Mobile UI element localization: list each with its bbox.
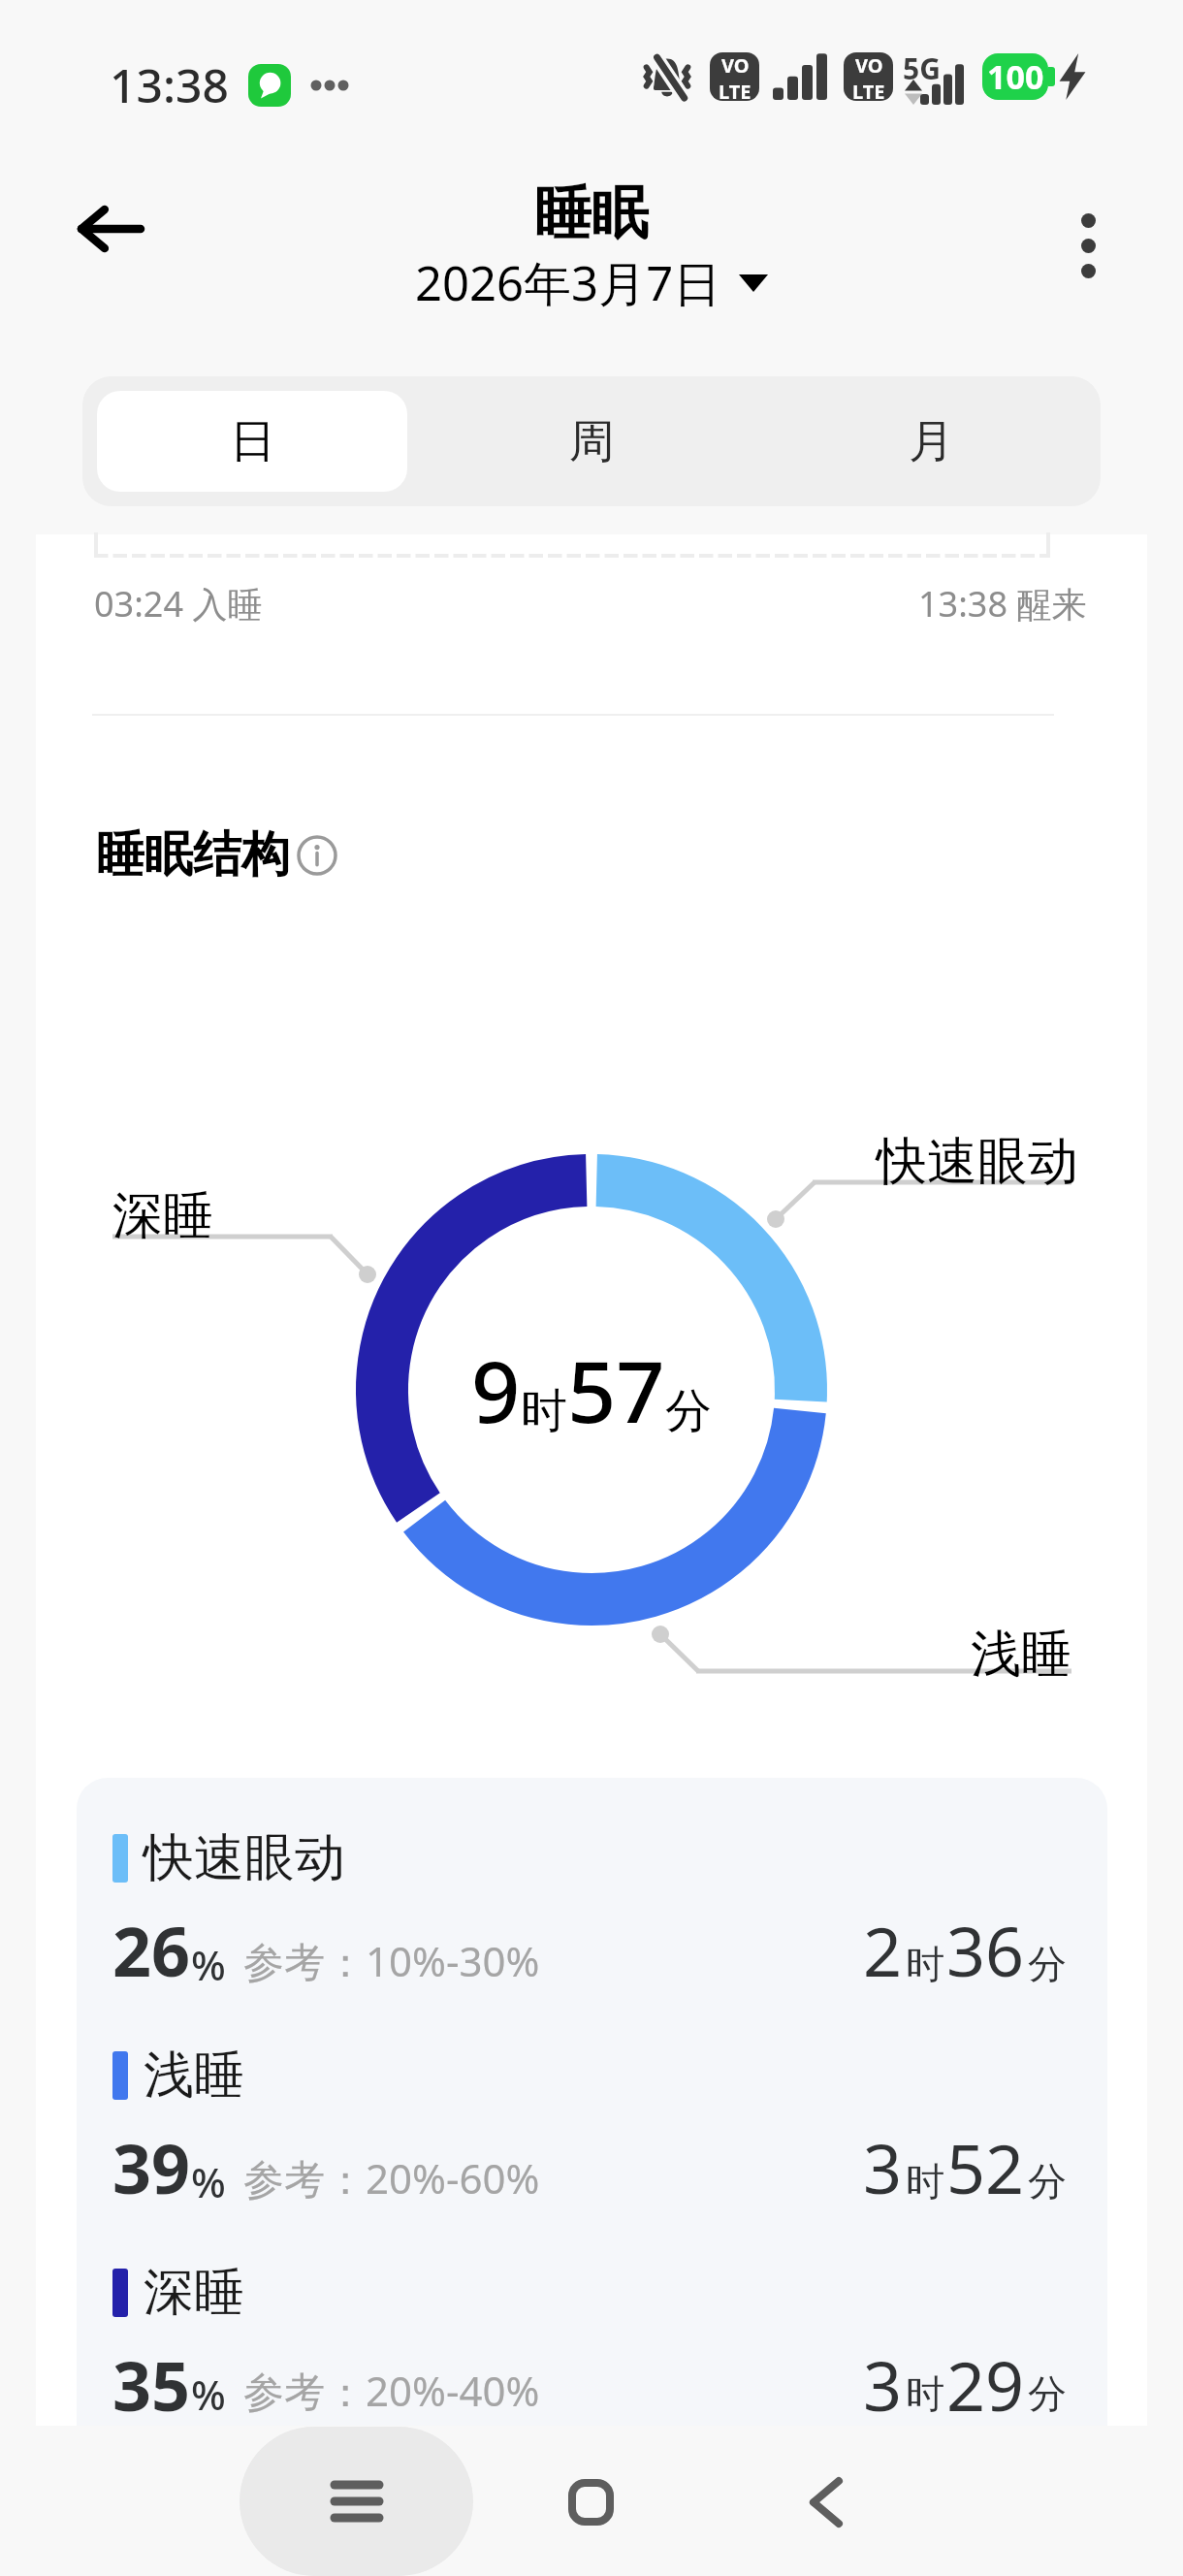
staticText: 参考：20%-60% [243, 2150, 540, 2206]
staticText: 29 [946, 2338, 1025, 2426]
staticText: VO [855, 52, 883, 79]
staticText: 分 [665, 1382, 712, 1440]
staticText: 浅睡 [971, 1623, 1071, 1687]
button[interactable]: Back [55, 175, 164, 283]
button[interactable]: Home [532, 2444, 649, 2560]
staticText: 35 [112, 2338, 191, 2426]
staticText: % [191, 2367, 226, 2422]
staticText: 13:38 [110, 53, 229, 116]
staticText: 时 [906, 2157, 944, 2206]
button[interactable]: 2026年3月7日 [415, 250, 768, 315]
staticText: 13:38 醒来 [918, 580, 1087, 628]
staticText: 52 [946, 2121, 1025, 2213]
staticText: 时 [521, 1382, 567, 1440]
staticText: 时 [906, 1940, 944, 1988]
staticText: 39 [112, 2121, 191, 2213]
staticText: LTE [719, 79, 751, 101]
staticText: 2026年3月7日 [415, 250, 721, 315]
button[interactable]: Recents [240, 2427, 473, 2576]
staticText: 9 [471, 1332, 521, 1448]
staticText: 26 [112, 1904, 191, 1996]
staticText: 深睡 [112, 1184, 213, 1248]
button[interactable]: Back [768, 2444, 884, 2560]
staticText: 浅睡 [144, 2044, 244, 2108]
staticText: 3 [863, 2338, 903, 2426]
staticText: 100 [987, 54, 1044, 99]
staticText: 2 [863, 1904, 903, 1996]
staticText: LTE [852, 79, 885, 101]
staticText: 快速眼动 [144, 1826, 345, 1890]
staticText: 深睡 [144, 2261, 244, 2325]
staticText: 3 [863, 2121, 903, 2213]
staticText: 参考：10%-30% [243, 1933, 540, 1988]
button[interactable]: 月 [761, 376, 1101, 506]
button[interactable]: More options [1034, 191, 1142, 300]
button[interactable]: Sleep structure info [296, 834, 338, 877]
button[interactable]: 周 [422, 376, 761, 506]
staticText: 分 [1028, 2157, 1067, 2206]
staticText: VO [721, 52, 750, 79]
staticText: % [191, 2154, 226, 2209]
staticText: 分 [1028, 1940, 1067, 1988]
staticText: 快速眼动 [877, 1130, 1078, 1194]
staticText: 57 [567, 1332, 665, 1448]
staticText: 36 [946, 1904, 1025, 1996]
staticText: 时 [906, 2369, 944, 2418]
staticText: 周 [569, 413, 615, 470]
staticText: % [191, 1937, 226, 1992]
staticText: 日 [230, 413, 275, 470]
staticText: 03:24 入睡 [94, 580, 263, 628]
staticText: 分 [1028, 2369, 1067, 2418]
staticText: 睡眠 [534, 177, 649, 249]
button[interactable]: 日 [97, 391, 407, 492]
staticText: 参考：20%-40% [243, 2363, 540, 2418]
staticText: 睡眠结构 [96, 824, 290, 885]
staticText: 月 [909, 413, 954, 470]
staticText: 5G [903, 48, 941, 88]
